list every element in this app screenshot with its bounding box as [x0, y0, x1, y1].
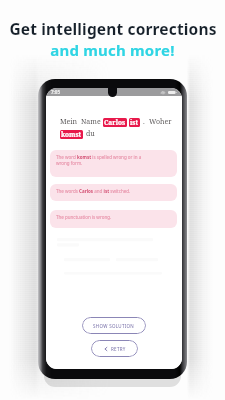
- staticText: Get intelligent corrections: [9, 18, 217, 39]
- staticText: Mein: [60, 117, 78, 127]
- staticText: The words Carlos and ist switched.: [56, 188, 131, 194]
- staticText: Carlos: [104, 118, 126, 127]
- staticText: The punctuation is wrong.: [56, 214, 112, 220]
- staticText: du: [86, 129, 95, 139]
- staticText: komst: [61, 130, 82, 139]
- staticText: ist: [130, 118, 139, 127]
- button[interactable]: SHOW SOLUTION: [82, 317, 146, 334]
- button[interactable]: The punctuation is wrong.: [50, 210, 177, 228]
- button[interactable]: The words Carlos and ist switched.: [50, 184, 177, 201]
- staticText: SHOW SOLUTION: [93, 323, 135, 329]
- staticText: .: [143, 117, 145, 127]
- button[interactable]: RETRY: [91, 340, 138, 357]
- staticText: and much more!: [50, 40, 175, 60]
- staticText: RETRY: [111, 346, 126, 352]
- button[interactable]: The word komst is spelled wrong or in a …: [50, 150, 177, 177]
- staticText: The word komst is spelled wrong or in a …: [56, 154, 142, 166]
- staticText: Name: [81, 117, 101, 127]
- staticText: Woher: [149, 117, 172, 127]
- staticText: 7:05: [51, 89, 60, 95]
